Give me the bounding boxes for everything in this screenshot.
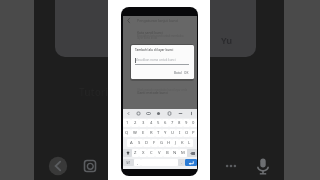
staticText: . (181, 160, 183, 165)
button[interactable]: O (183, 129, 190, 137)
staticText: U (171, 130, 175, 136)
staticText: N (173, 150, 177, 156)
button[interactable]: J (172, 139, 179, 147)
button[interactable]: N (171, 149, 179, 157)
staticText: O (185, 130, 189, 136)
staticText: V (158, 150, 161, 156)
button[interactable]: Keyboard tool 3 (153, 109, 164, 118)
button[interactable]: 2 (131, 119, 139, 127)
button[interactable]: Keyboard tool 5 (175, 109, 186, 118)
button[interactable]: Keyboard tool 1 (133, 109, 143, 118)
staticText: P (192, 130, 195, 136)
staticText: 3 (142, 120, 145, 126)
button[interactable]: I (176, 129, 183, 137)
button[interactable]: Back (48, 156, 68, 176)
button[interactable]: 3 (139, 119, 147, 127)
button[interactable]: 4 (147, 119, 155, 127)
button[interactable]: L (186, 139, 193, 147)
staticText: Tutorial (79, 85, 117, 99)
staticText: 8 (178, 120, 181, 126)
button[interactable]: Keyboard tool 6 (186, 109, 197, 118)
button[interactable]: W (131, 129, 139, 137)
button[interactable]: G (158, 139, 165, 147)
button[interactable]: Enter (185, 159, 197, 166)
staticText: R (150, 130, 153, 136)
button[interactable]: 9 (183, 119, 190, 127)
button[interactable]: 6 (162, 119, 169, 127)
staticText: F (153, 140, 156, 146)
button[interactable]: H (165, 139, 172, 147)
staticText: K (181, 140, 184, 146)
button[interactable]: Sticker (80, 156, 100, 176)
button[interactable]: Y (162, 129, 169, 137)
button[interactable]: F (151, 139, 158, 147)
button[interactable]: More options (221, 156, 241, 176)
staticText: Pengaturan lanjut kunci (137, 18, 179, 23)
button[interactable]: Keyboard tool 0 (123, 109, 133, 118)
button[interactable]: Batal (173, 71, 183, 75)
staticText: 9 (185, 120, 188, 126)
staticText: B (166, 150, 169, 156)
button[interactable]: . (178, 159, 185, 166)
button[interactable]: A (127, 139, 135, 147)
button[interactable]: D (143, 139, 151, 147)
staticText: 5 (157, 120, 160, 126)
staticText: 7 (171, 120, 174, 126)
staticText: Ganti metode kunci (137, 90, 168, 94)
staticText: Kata sandi kunci (137, 30, 163, 34)
staticText: Y (164, 130, 167, 136)
button[interactable]: , (134, 159, 141, 166)
button[interactable]: M (179, 149, 187, 157)
staticText: 6 (164, 120, 167, 126)
button[interactable]: 5 (155, 119, 162, 127)
button[interactable]: C (147, 149, 155, 157)
staticText: 0 (192, 120, 195, 126)
button[interactable]: X (139, 149, 147, 157)
button[interactable]: U (169, 129, 176, 137)
button[interactable]: 7 (169, 119, 176, 127)
staticText: X (142, 150, 145, 156)
staticText: 4 (150, 120, 153, 126)
button[interactable]: 1 (123, 119, 131, 127)
button[interactable]: R (147, 129, 155, 137)
staticText: G (160, 140, 164, 146)
staticText: C (150, 150, 153, 156)
staticText: !#1 (126, 161, 131, 165)
button[interactable]: 0 (190, 119, 197, 127)
staticText: A (130, 140, 133, 146)
button[interactable]: P (190, 129, 197, 137)
button[interactable]: Q (123, 129, 131, 137)
staticText: D (145, 140, 149, 146)
staticText: 2 (134, 120, 137, 126)
button[interactable]: Keyboard tool 2 (143, 109, 153, 118)
button[interactable]: B (163, 149, 171, 157)
button[interactable]: E (139, 129, 147, 137)
button[interactable]: Navigate up (124, 16, 132, 24)
staticText: M (181, 150, 185, 156)
staticText: H (167, 140, 171, 146)
button[interactable]: K (179, 139, 186, 147)
button[interactable]: Z (132, 149, 139, 157)
button[interactable]: Shift (123, 149, 132, 157)
button[interactable]: V (155, 149, 163, 157)
staticText: S (138, 140, 141, 146)
staticText: , (137, 160, 139, 165)
staticText: L (188, 140, 191, 146)
button[interactable]: S (135, 139, 143, 147)
button[interactable]: OK (183, 71, 190, 75)
staticText: Z (134, 150, 137, 156)
staticText: E (142, 130, 145, 136)
button[interactable]: Symbols (123, 159, 134, 166)
staticText: W (133, 130, 137, 136)
staticText: 1 (126, 120, 129, 126)
button[interactable]: Backspace (187, 149, 197, 157)
button[interactable]: T (155, 129, 162, 137)
button[interactable]: Microphone (252, 155, 274, 177)
button[interactable]: Keyboard tool 4 (164, 109, 175, 118)
staticText: J (175, 140, 177, 146)
button[interactable]: 8 (176, 119, 183, 127)
